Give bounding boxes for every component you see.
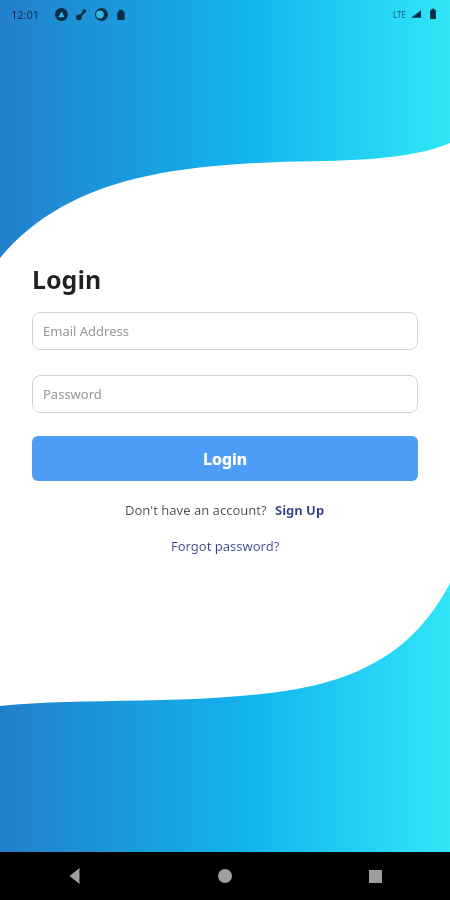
staticText: Forgot password? [171,537,280,555]
button[interactable]: Forgot password? [171,537,280,555]
staticText: Email Address [43,322,129,340]
button[interactable]: Recent apps [300,852,450,900]
button[interactable]: Sign Up [275,501,325,519]
button[interactable]: Password [32,375,418,413]
staticText: LTE [393,9,406,20]
staticText: Password [43,385,102,403]
button[interactable]: Home [150,852,300,900]
staticText: Login [32,262,102,296]
staticText: 12:01 [11,7,40,22]
staticText: Sign Up [275,501,325,519]
staticText: Don't have an account? [125,501,267,519]
button[interactable]: Login [32,436,418,481]
staticText: Login [203,448,248,470]
button[interactable]: Back [0,852,150,900]
button[interactable]: Email Address [32,312,418,350]
